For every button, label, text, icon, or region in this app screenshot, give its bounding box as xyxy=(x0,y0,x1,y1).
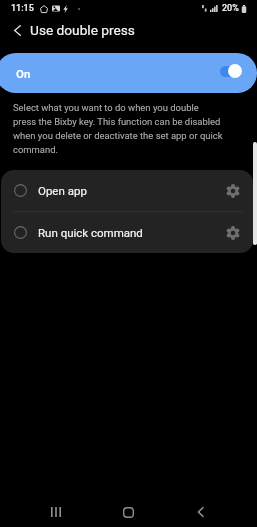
button[interactable]: Navigate up xyxy=(4,17,30,43)
button[interactable]: Run quick command xyxy=(1,212,253,253)
button[interactable]: Settings xyxy=(220,178,246,204)
staticText: Select what you want to do when you doub… xyxy=(13,102,223,156)
staticText: On xyxy=(16,67,31,80)
button[interactable]: On xyxy=(0,53,257,93)
staticText: Use double press xyxy=(30,22,135,38)
button[interactable]: Home xyxy=(111,497,145,527)
staticText: Run quick command xyxy=(38,226,143,239)
button[interactable]: Open app xyxy=(1,170,253,211)
button[interactable]: Settings xyxy=(220,220,246,246)
button[interactable]: Back xyxy=(183,497,217,527)
button[interactable]: Recent apps xyxy=(39,497,73,527)
staticText: Open app xyxy=(38,184,87,197)
staticText: 20% xyxy=(222,3,239,14)
staticText: 11:15 xyxy=(11,3,34,14)
